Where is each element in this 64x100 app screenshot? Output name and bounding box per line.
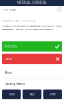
button[interactable]: Cause <box>2 54 62 64</box>
staticText: Cause <box>4 57 12 61</box>
staticText: Effect <box>4 71 11 75</box>
button[interactable]: Effect <box>2 68 62 79</box>
button[interactable]: Intensity <box>2 41 62 52</box>
staticText: Causing factors <box>4 82 24 86</box>
staticText: Skip <box>29 93 34 96</box>
button[interactable]: Pause timer <box>57 7 62 12</box>
staticText: Question No. 1 out of 20 <box>2 19 35 22</box>
staticText: 50-50 <box>9 93 14 96</box>
staticText: Timer <box>50 93 56 96</box>
button[interactable]: Causing factors <box>2 79 62 90</box>
staticText: Timer <box>2 8 8 11</box>
staticText: MEDICAL-SURGICAL <box>17 0 47 5</box>
staticText: 01:24 <box>8 8 15 11</box>
staticText: Among the following assessments through … <box>2 24 62 31</box>
button[interactable]: Skip <box>23 90 41 99</box>
staticText: Intensity <box>4 45 16 48</box>
button[interactable]: 50-50 <box>2 90 21 99</box>
button[interactable]: Timer <box>43 90 62 99</box>
